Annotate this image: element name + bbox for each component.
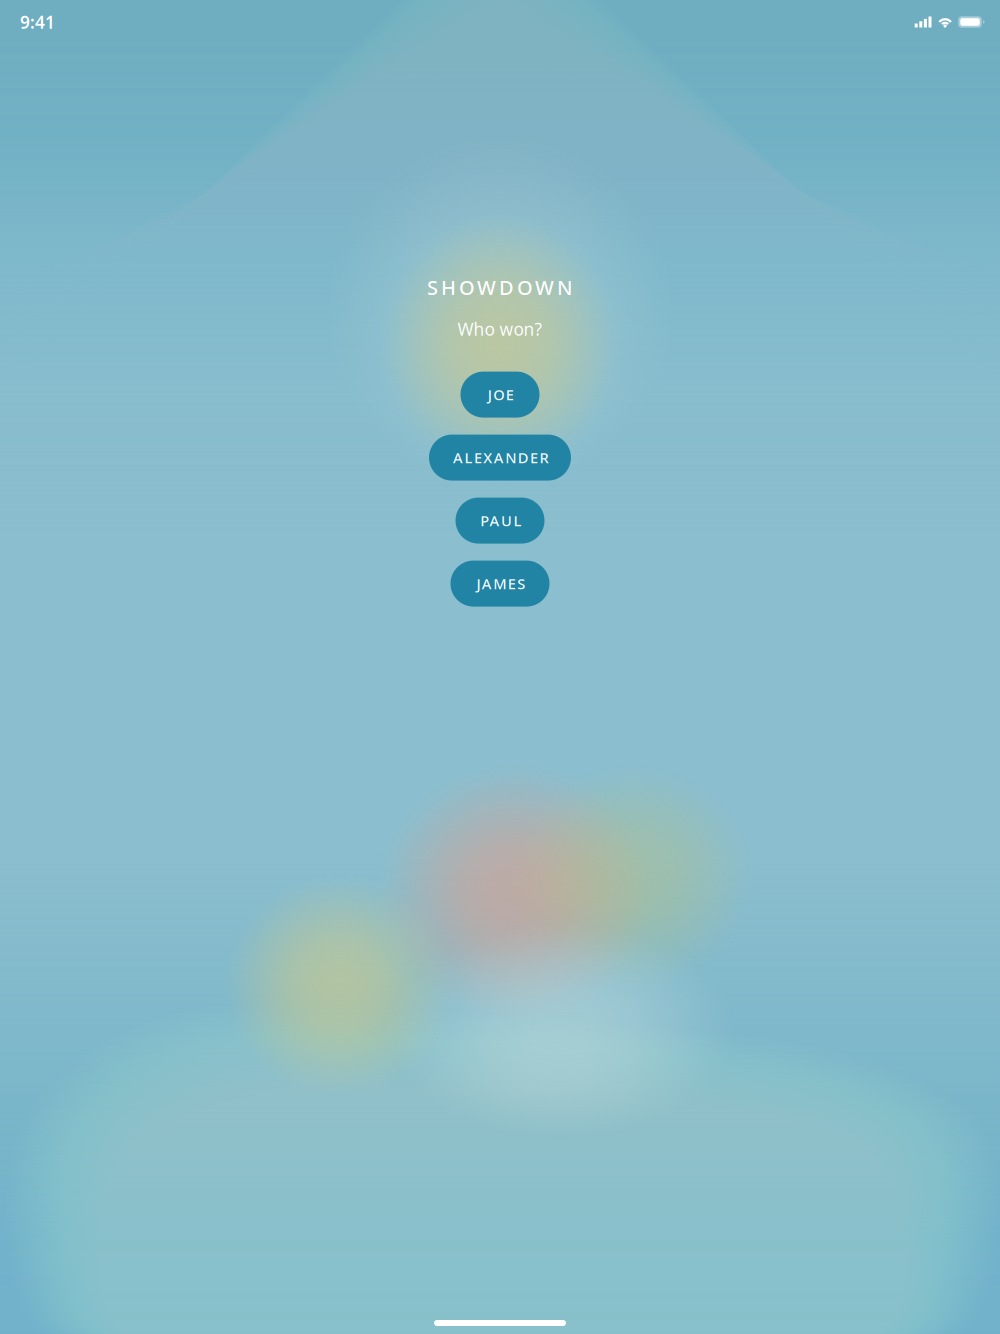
staticText: Who won? bbox=[457, 318, 542, 341]
staticText: JOE bbox=[488, 385, 519, 404]
staticText: 9:41 bbox=[20, 10, 55, 33]
button[interactable]: JAMES bbox=[450, 561, 549, 607]
staticText: ALEXANDER bbox=[453, 448, 554, 467]
button[interactable]: PAUL bbox=[455, 498, 544, 544]
staticText: JAMES bbox=[476, 574, 531, 593]
button[interactable]: JOE bbox=[460, 372, 539, 418]
staticText: SHOWDOWN bbox=[427, 274, 581, 301]
staticText: PAUL bbox=[480, 511, 527, 530]
button[interactable]: ALEXANDER bbox=[429, 435, 571, 481]
